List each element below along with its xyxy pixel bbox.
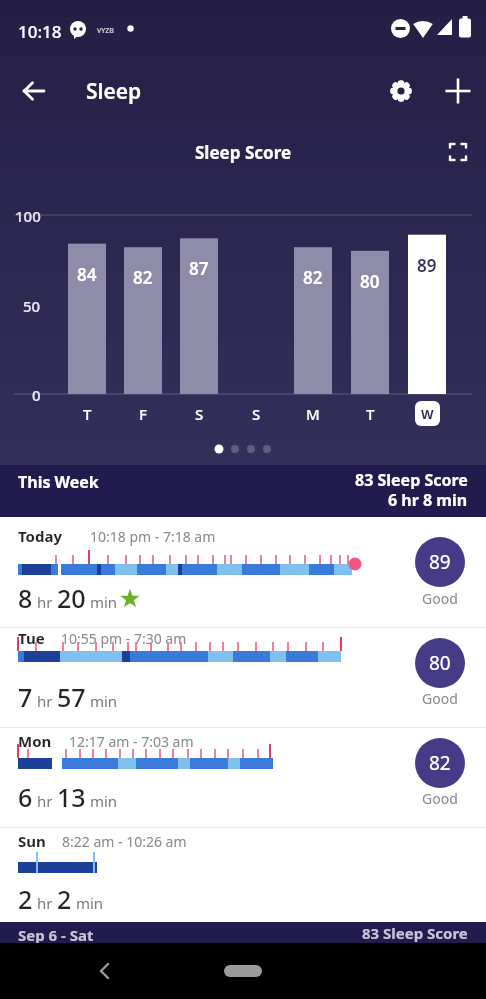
- button[interactable]: 89: [415, 537, 465, 587]
- staticText: Good: [422, 589, 458, 607]
- button[interactable]: Sun: [0, 827, 486, 922]
- staticText: S: [195, 404, 204, 423]
- staticText: Mon: [18, 731, 52, 751]
- staticText: 6 hr 8 min: [388, 489, 468, 509]
- staticText: min: [86, 592, 118, 612]
- staticText: F: [139, 404, 147, 423]
- staticText: 83 Sleep Score: [355, 469, 468, 489]
- staticText: Sleep: [86, 77, 142, 106]
- staticText: 8:22 am - 10:26 am: [62, 832, 187, 851]
- staticText: 6: [18, 780, 33, 814]
- button[interactable]: Mon: [0, 727, 486, 827]
- staticText: hr: [33, 791, 57, 811]
- staticText: 2: [57, 882, 72, 916]
- staticText: W: [421, 405, 434, 423]
- button[interactable]: [85, 951, 125, 991]
- button[interactable]: 82: [415, 738, 465, 788]
- staticText: 57: [57, 680, 86, 714]
- staticText: Tue: [18, 628, 45, 648]
- staticText: min: [86, 691, 118, 711]
- staticText: hr: [33, 893, 57, 913]
- staticText: 7: [18, 680, 33, 714]
- button[interactable]: [441, 135, 475, 169]
- staticText: Good: [422, 689, 458, 707]
- staticText: Sleep Score: [195, 141, 292, 163]
- button[interactable]: [436, 69, 480, 113]
- staticText: T: [366, 404, 375, 423]
- staticText: 10:18: [18, 20, 62, 43]
- button[interactable]: Today: [0, 517, 486, 627]
- staticText: 20: [57, 581, 86, 615]
- staticText: 2: [18, 882, 33, 916]
- staticText: 82: [429, 750, 451, 776]
- staticText: min: [72, 893, 104, 913]
- staticText: 89: [429, 549, 451, 575]
- staticText: 10:18 pm - 7:18 am: [90, 527, 216, 546]
- staticText: 100: [15, 206, 41, 224]
- staticText: M: [306, 404, 320, 423]
- button[interactable]: [379, 69, 423, 113]
- staticText: 82: [133, 266, 153, 286]
- staticText: Sep 6 - Sat: [18, 925, 94, 945]
- staticText: 10:55 pm - 7:30 am: [61, 629, 187, 648]
- staticText: T: [83, 404, 92, 423]
- staticText: 89: [417, 254, 437, 274]
- staticText: 0: [32, 385, 41, 403]
- button[interactable]: 80: [415, 638, 465, 688]
- button[interactable]: Tue: [0, 627, 486, 727]
- button[interactable]: Sep 6 - Sat: [0, 922, 486, 943]
- staticText: Today: [18, 526, 63, 546]
- staticText: 50: [23, 296, 41, 314]
- button[interactable]: [12, 69, 56, 113]
- staticText: 84: [77, 263, 97, 283]
- staticText: min: [86, 791, 118, 811]
- staticText: hr: [33, 592, 57, 612]
- button[interactable]: This Week: [0, 465, 486, 517]
- staticText: 80: [360, 270, 380, 290]
- staticText: 82: [303, 266, 323, 286]
- staticText: This Week: [18, 471, 99, 493]
- staticText: VYZB: [97, 26, 114, 36]
- staticText: Good: [422, 789, 458, 807]
- staticText: 12:17 am - 7:03 am: [69, 732, 194, 751]
- staticText: 80: [429, 650, 451, 676]
- staticText: 8: [18, 581, 33, 615]
- staticText: Sun: [18, 831, 46, 851]
- staticText: 13: [57, 780, 86, 814]
- button[interactable]: [224, 965, 262, 977]
- staticText: S: [252, 404, 261, 423]
- staticText: hr: [33, 691, 57, 711]
- staticText: 87: [189, 257, 209, 277]
- staticText: 83 Sleep Score: [362, 923, 468, 943]
